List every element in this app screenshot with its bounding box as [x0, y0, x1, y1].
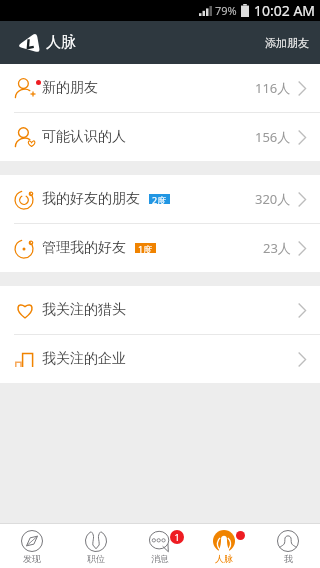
staticText: 新的朋友	[42, 79, 98, 97]
button[interactable]: 可能认识的人	[0, 113, 320, 161]
staticText: 79%	[215, 3, 237, 18]
button[interactable]: 管理我的好友	[0, 224, 320, 272]
button[interactable]: 发现	[0, 524, 64, 568]
button[interactable]: 添加朋友	[254, 21, 320, 64]
staticText: 职位	[87, 553, 105, 564]
staticText: 我	[284, 553, 293, 564]
staticText: 人脉	[215, 553, 233, 564]
button[interactable]: 新的朋友	[0, 64, 320, 112]
staticText: 2度	[152, 194, 167, 204]
button[interactable]: 我关注的企业	[0, 335, 320, 383]
staticText: 可能认识的人	[42, 128, 126, 146]
staticText: 1度	[138, 243, 153, 253]
staticText: 我关注的猎头	[42, 301, 126, 319]
staticText: 人脉	[46, 33, 76, 52]
staticText: 发现	[23, 553, 41, 564]
staticText: 消息	[151, 553, 169, 564]
button[interactable]: Menu	[13, 30, 41, 58]
staticText: 156人	[255, 128, 291, 146]
button[interactable]: 我关注的猎头	[0, 286, 320, 334]
button[interactable]: 1	[128, 524, 192, 568]
staticText: 10:02 AM	[254, 1, 316, 20]
button[interactable]: 我	[256, 524, 320, 568]
staticText: 管理我的好友	[42, 239, 126, 257]
button[interactable]: 我的好友的朋友	[0, 175, 320, 223]
staticText: 我关注的企业	[42, 350, 126, 368]
staticText: 23人	[263, 239, 291, 257]
staticText: 添加朋友	[265, 36, 309, 50]
staticText: 116人	[255, 79, 291, 97]
staticText: 1	[174, 531, 180, 543]
button[interactable]: 职位	[64, 524, 128, 568]
staticText: 320人	[255, 190, 291, 208]
button[interactable]: 人脉	[192, 524, 256, 568]
staticText: 我的好友的朋友	[42, 190, 140, 208]
